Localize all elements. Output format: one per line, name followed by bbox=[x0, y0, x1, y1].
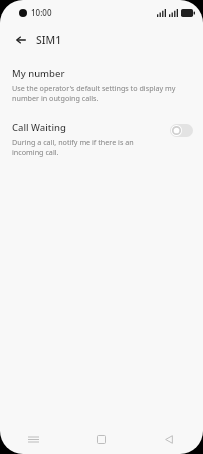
staticText: Use the operator's default settings to d… bbox=[12, 83, 184, 103]
staticText: Call Waiting bbox=[12, 121, 66, 134]
button[interactable]: Home bbox=[67, 425, 135, 454]
button[interactable]: Back bbox=[10, 29, 32, 51]
staticText: 10:00 bbox=[31, 7, 52, 18]
button[interactable]: Back bbox=[135, 425, 203, 454]
staticText: SIM1 bbox=[36, 33, 62, 47]
button[interactable]: My number bbox=[0, 65, 203, 105]
button[interactable]: Call Waiting bbox=[0, 119, 203, 159]
staticText: My number bbox=[12, 67, 65, 80]
button[interactable]: Recent apps bbox=[0, 425, 67, 454]
button[interactable]: Call Waiting toggle bbox=[170, 124, 193, 137]
staticText: During a call, notify me if there is an … bbox=[12, 137, 155, 157]
